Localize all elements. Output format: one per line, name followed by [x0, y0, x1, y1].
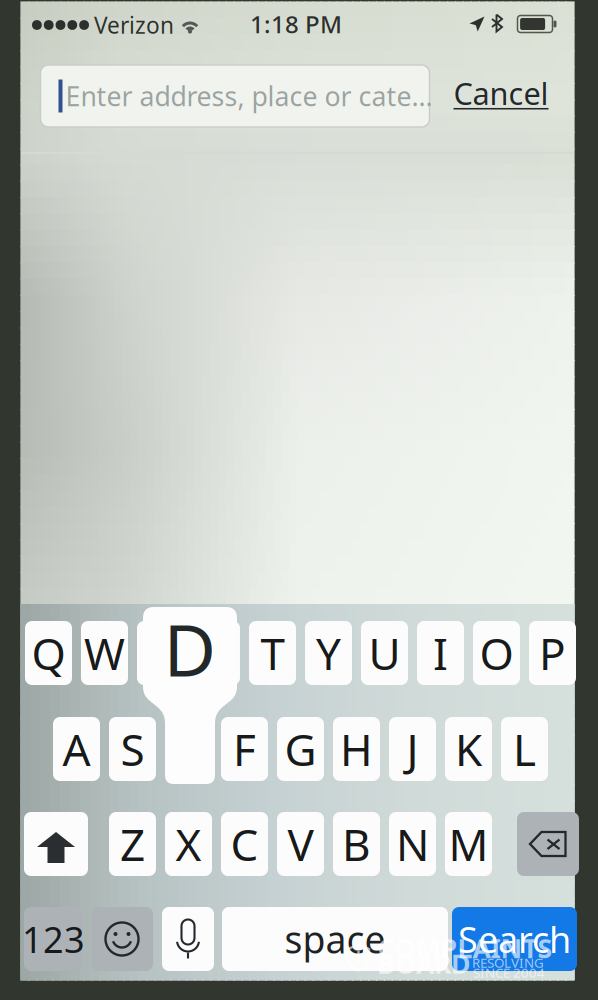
staticText: X [175, 815, 201, 873]
button[interactable]: Dictation [162, 907, 214, 971]
button[interactable]: V [277, 812, 324, 876]
staticText: H [340, 720, 373, 778]
staticText: P [539, 624, 566, 682]
staticText: COMPLAINTS [377, 930, 552, 966]
button[interactable]: H [333, 717, 380, 781]
button[interactable]: T [249, 621, 296, 685]
staticText: G [284, 720, 316, 778]
button[interactable]: Z [109, 812, 156, 876]
staticText: I [433, 624, 448, 682]
button[interactable]: A [53, 717, 100, 781]
staticText: Q [31, 624, 65, 682]
button[interactable]: S [109, 717, 156, 781]
staticText: Enter address, place or cate... [65, 78, 432, 114]
button[interactable]: O [473, 621, 520, 685]
staticText: V [287, 815, 313, 873]
staticText: Search [458, 915, 571, 963]
staticText: E [148, 624, 172, 682]
button[interactable]: W [81, 621, 128, 685]
staticText: T [260, 624, 284, 682]
button[interactable]: E [137, 621, 184, 685]
button[interactable]: U [361, 621, 408, 685]
staticText: S [120, 720, 144, 778]
button[interactable]: Q [25, 621, 72, 685]
staticText: F [233, 720, 256, 778]
staticText: BOARD [377, 946, 471, 981]
staticText: A [62, 720, 90, 778]
staticText: Z [120, 815, 145, 873]
staticText: O [479, 624, 513, 682]
button[interactable]: M [445, 812, 492, 876]
button[interactable]: C [221, 812, 268, 876]
button[interactable]: N [389, 812, 436, 876]
button[interactable]: Delete [517, 812, 579, 876]
button[interactable]: X [165, 812, 212, 876]
staticText: U [368, 624, 400, 682]
button[interactable]: F [221, 717, 268, 781]
button[interactable]: Enter address, place or cate... [42, 65, 431, 127]
staticText: W [84, 624, 125, 682]
staticText: 123 [22, 915, 85, 963]
button[interactable]: G [277, 717, 324, 781]
staticText: M [448, 815, 488, 873]
button[interactable]: R [193, 621, 240, 685]
staticText: SINCE 2004 [473, 964, 545, 981]
staticText: space [284, 914, 385, 964]
staticText: L [513, 720, 536, 778]
staticText: B [342, 815, 371, 873]
staticText: N [396, 815, 429, 873]
button[interactable]: Emoji keyboard [91, 907, 153, 971]
staticText: C [230, 815, 258, 873]
staticText: RESOLVING [472, 954, 544, 971]
button[interactable]: Y [305, 621, 352, 685]
button[interactable]: space [222, 907, 448, 971]
button[interactable]: 123 [24, 907, 83, 971]
staticText: 1:18 PM [250, 8, 342, 40]
staticText: J [406, 720, 418, 778]
staticText: Cancel [453, 73, 548, 113]
staticText: D [163, 601, 216, 696]
button[interactable]: Search [452, 907, 577, 971]
staticText: Y [316, 624, 341, 682]
staticText: Verizon [94, 10, 174, 40]
button[interactable]: J [389, 717, 436, 781]
button[interactable]: B [333, 812, 380, 876]
button[interactable]: P [529, 621, 576, 685]
button[interactable]: Shift [24, 812, 88, 876]
button[interactable]: K [445, 717, 492, 781]
button[interactable]: I [417, 621, 464, 685]
staticText: R [203, 624, 230, 682]
button[interactable]: L [501, 717, 548, 781]
button[interactable]: Cancel [447, 67, 554, 119]
staticText: K [455, 720, 482, 778]
